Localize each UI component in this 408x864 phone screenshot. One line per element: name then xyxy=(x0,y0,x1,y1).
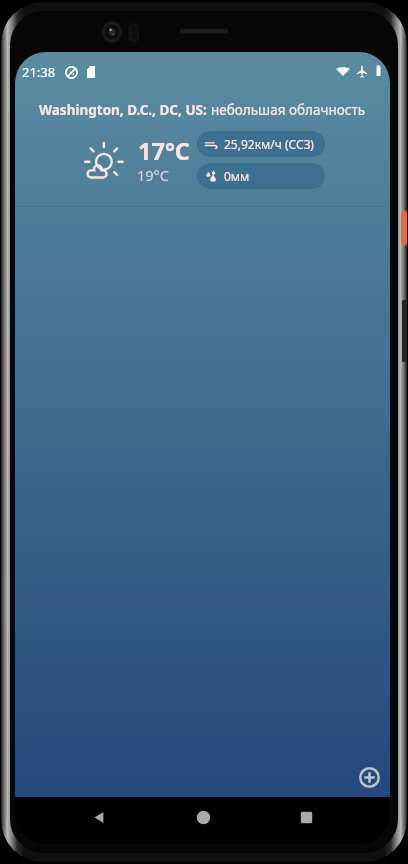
button[interactable]: Recent apps xyxy=(286,797,326,837)
button[interactable]: Add city xyxy=(353,761,385,793)
staticText: 0мм xyxy=(224,168,250,184)
button[interactable]: Back xyxy=(79,797,119,837)
button[interactable]: Home xyxy=(183,797,223,837)
staticText: Washington, D.C., DC, US: xyxy=(39,101,211,119)
staticText: 19°C xyxy=(137,165,169,185)
staticText: небольшая облачность xyxy=(211,101,366,119)
staticText: 17°C xyxy=(138,135,190,167)
staticText: 25,92км/ч (ССЗ) xyxy=(224,136,314,152)
button[interactable]: 0мм xyxy=(197,163,325,189)
staticText: 21:38 xyxy=(22,63,56,81)
button[interactable]: 25,92км/ч (ССЗ) xyxy=(197,131,325,157)
